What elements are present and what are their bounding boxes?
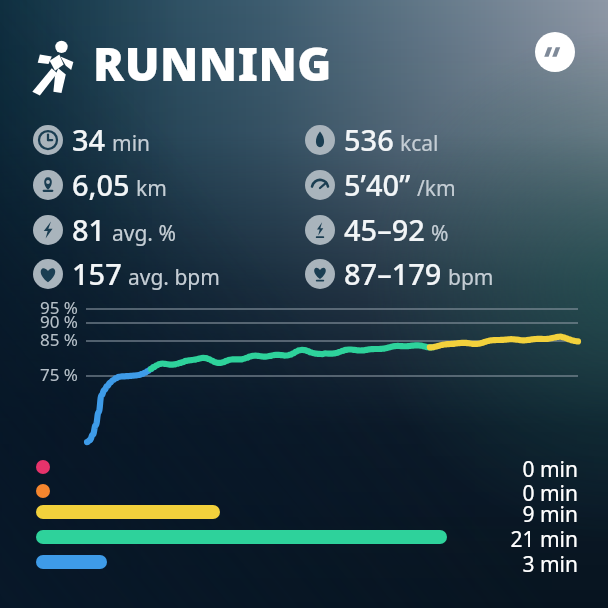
button[interactable]: heart: [33, 254, 220, 293]
button[interactable]: 21 min: [36, 525, 578, 549]
button[interactable]: Polar logo: [535, 32, 575, 72]
staticText: kcal: [400, 129, 439, 158]
staticText: avg. bpm: [128, 263, 220, 292]
staticText: 85 %: [0, 328, 78, 608]
staticText: 21 min: [451, 525, 578, 549]
button[interactable]: gauge: [305, 165, 456, 204]
button[interactable]: pin: [33, 165, 167, 204]
other: bolt: [33, 215, 63, 245]
button[interactable]: heartbar: [305, 254, 494, 293]
other: heart: [33, 259, 63, 289]
staticText: 81: [72, 210, 106, 249]
button[interactable]: 3 min: [36, 550, 578, 574]
staticText: km: [136, 174, 167, 203]
staticText: 34: [72, 120, 106, 159]
staticText: 6,05: [72, 165, 130, 204]
other: boltbar: [305, 215, 335, 245]
staticText: RUNNING: [93, 32, 332, 95]
other: drop: [305, 125, 335, 155]
staticText: 45–92: [344, 210, 425, 249]
staticText: 9 min: [224, 500, 578, 524]
button[interactable]: bolt: [33, 210, 176, 249]
staticText: 536: [344, 120, 394, 159]
staticText: %: [431, 219, 449, 248]
staticText: avg. %: [112, 219, 176, 248]
staticText: 87–179: [344, 254, 442, 293]
staticText: 157: [72, 254, 122, 293]
staticText: 95 %: [0, 296, 78, 608]
staticText: 0 min: [54, 455, 578, 479]
button[interactable]: boltbar: [305, 210, 449, 249]
staticText: 75 %: [0, 363, 78, 608]
staticText: min: [112, 129, 151, 158]
button[interactable]: 0 min: [36, 455, 578, 479]
button[interactable]: drop: [305, 120, 439, 159]
other: heartbar: [305, 259, 335, 289]
staticText: 90 %: [0, 310, 78, 608]
other: clock: [33, 125, 63, 155]
other: gauge: [305, 170, 335, 200]
staticText: 5’40”: [344, 165, 411, 204]
staticText: 3 min: [111, 550, 578, 574]
other: Running activity: [28, 36, 82, 98]
button[interactable]: 9 min: [36, 500, 578, 524]
button[interactable]: Running activity: [28, 35, 332, 98]
staticText: 0 min: [54, 479, 578, 503]
staticText: bpm: [448, 263, 494, 292]
staticText: /km: [417, 174, 456, 203]
other: pin: [33, 170, 63, 200]
button[interactable]: 0 min: [36, 479, 578, 503]
button[interactable]: clock: [33, 120, 151, 159]
